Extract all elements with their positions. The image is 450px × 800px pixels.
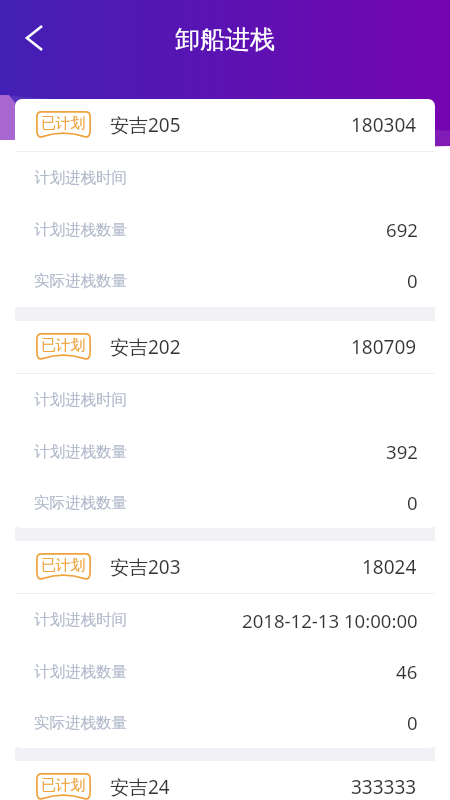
- staticText: 安吉202: [110, 334, 181, 360]
- staticText: 已计划: [41, 556, 86, 575]
- button[interactable]: 已计划: [15, 321, 435, 528]
- staticText: 实际进栈数量: [34, 493, 127, 513]
- staticText: 180709: [351, 334, 417, 360]
- staticText: 实际进栈数量: [34, 271, 127, 291]
- staticText: 计划进栈数量: [34, 220, 127, 240]
- staticText: 已计划: [41, 776, 86, 795]
- staticText: 安吉205: [110, 112, 181, 138]
- staticText: 计划进栈时间: [34, 610, 127, 630]
- staticText: 计划进栈时间: [34, 390, 127, 410]
- button[interactable]: Back: [0, 10, 62, 66]
- staticText: 安吉24: [110, 774, 170, 800]
- staticText: 计划进栈时间: [34, 168, 127, 188]
- staticText: 392: [386, 439, 418, 464]
- staticText: 已计划: [41, 336, 86, 355]
- staticText: 692: [386, 217, 418, 242]
- staticText: 计划进栈数量: [34, 662, 127, 682]
- staticText: 2018-12-13 10:00:00: [242, 608, 418, 633]
- staticText: 卸船进栈: [175, 24, 275, 55]
- staticText: 计划进栈数量: [34, 442, 127, 462]
- staticText: 0: [407, 268, 418, 293]
- staticText: 0: [407, 490, 418, 515]
- button[interactable]: 已计划: [15, 761, 435, 800]
- staticText: 18024: [362, 554, 417, 580]
- staticText: 已计划: [41, 114, 86, 133]
- staticText: 0: [407, 710, 418, 735]
- staticText: 实际进栈数量: [34, 713, 127, 733]
- button[interactable]: 已计划: [15, 541, 435, 748]
- staticText: 333333: [351, 774, 417, 800]
- staticText: 180304: [351, 112, 417, 138]
- staticText: 46: [396, 659, 418, 684]
- button[interactable]: 已计划: [15, 99, 435, 306]
- staticText: 安吉203: [110, 554, 181, 580]
